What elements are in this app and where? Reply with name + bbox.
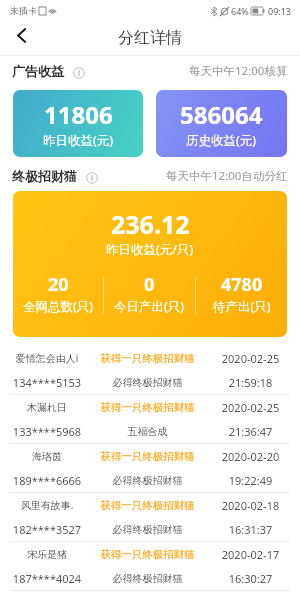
staticText: 586064 — [180, 98, 263, 131]
staticText: 19:22:49 — [206, 473, 295, 488]
staticText: 每天中午12:00自动分红 — [166, 168, 288, 184]
button[interactable]: 爱情怎会由人i — [0, 346, 300, 395]
staticText: 09:13 — [268, 5, 292, 17]
staticText: 未插卡 — [10, 5, 37, 16]
staticText: 风里有故事. — [5, 498, 89, 512]
staticText: 21:36:47 — [206, 424, 295, 439]
button[interactable]: 海珞茵 — [0, 444, 300, 493]
staticText: 获得一只终极招财猫 — [89, 499, 206, 512]
staticText: 必得终极招财猫 — [89, 572, 206, 585]
staticText: 16:31:37 — [206, 522, 295, 537]
staticText: 获得一只终极招财猫 — [89, 450, 206, 463]
staticText: 0 — [144, 272, 155, 297]
staticText: 134****5153 — [5, 375, 89, 390]
staticText: 4780 — [221, 272, 263, 297]
staticText: 全网总数(只) — [23, 298, 94, 315]
staticText: 每天中午12:00核算 — [189, 63, 288, 79]
staticText: 今日产出(只) — [114, 298, 185, 315]
staticText: 133****5968 — [5, 424, 89, 439]
button[interactable]: 风里有故事. — [0, 493, 300, 542]
button[interactable]: 木漏れ日 — [0, 395, 300, 444]
staticText: 必得终极招财猫 — [89, 376, 206, 389]
staticText: 2020-02-20 — [206, 449, 295, 464]
staticText: 昨日收益(元/只) — [106, 241, 194, 258]
staticText: 历史收益(元) — [186, 132, 257, 149]
staticText: 终极招财猫 — [12, 168, 77, 184]
staticText: 16:30:27 — [206, 571, 295, 586]
staticText: 五福合成 — [89, 425, 206, 438]
staticText: 189****6666 — [5, 473, 89, 488]
staticText: 广告收益 — [12, 63, 64, 79]
staticText: 11806 — [44, 98, 113, 131]
staticText: 64% — [231, 5, 249, 17]
staticText: 分红详情 — [118, 28, 182, 48]
button[interactable]: 586064 — [156, 90, 287, 157]
staticText: 待产出(只) — [213, 298, 271, 315]
staticText: 187****4024 — [5, 571, 89, 586]
staticText: 宋乐是猪 — [5, 548, 89, 561]
staticText: 20 — [48, 272, 69, 297]
button[interactable]: 11806 — [13, 90, 143, 157]
staticText: 海珞茵 — [5, 450, 89, 463]
button[interactable]: 236.12 — [13, 191, 287, 337]
staticText: 236.12 — [111, 207, 190, 241]
staticText: 182****3527 — [5, 522, 89, 537]
staticText: 2020-02-25 — [206, 351, 295, 366]
staticText: 21:59:18 — [206, 375, 295, 390]
staticText: 获得一只终极招财猫 — [89, 401, 206, 414]
staticText: 2020-02-17 — [206, 547, 295, 562]
button[interactable]: Back — [0, 21, 40, 55]
staticText: 获得一只终极招财猫 — [89, 548, 206, 561]
staticText: 获得一只终极招财猫 — [89, 352, 206, 365]
button[interactable]: 宋乐是猪 — [0, 542, 300, 591]
staticText: 2020-02-18 — [206, 498, 295, 513]
staticText: 爱情怎会由人i — [5, 351, 89, 365]
staticText: 2020-02-25 — [206, 400, 295, 415]
staticText: 木漏れ日 — [5, 401, 89, 414]
staticText: 必得终极招财猫 — [89, 523, 206, 536]
staticText: 必得终极招财猫 — [89, 474, 206, 487]
staticText: 昨日收益(元) — [43, 132, 114, 149]
